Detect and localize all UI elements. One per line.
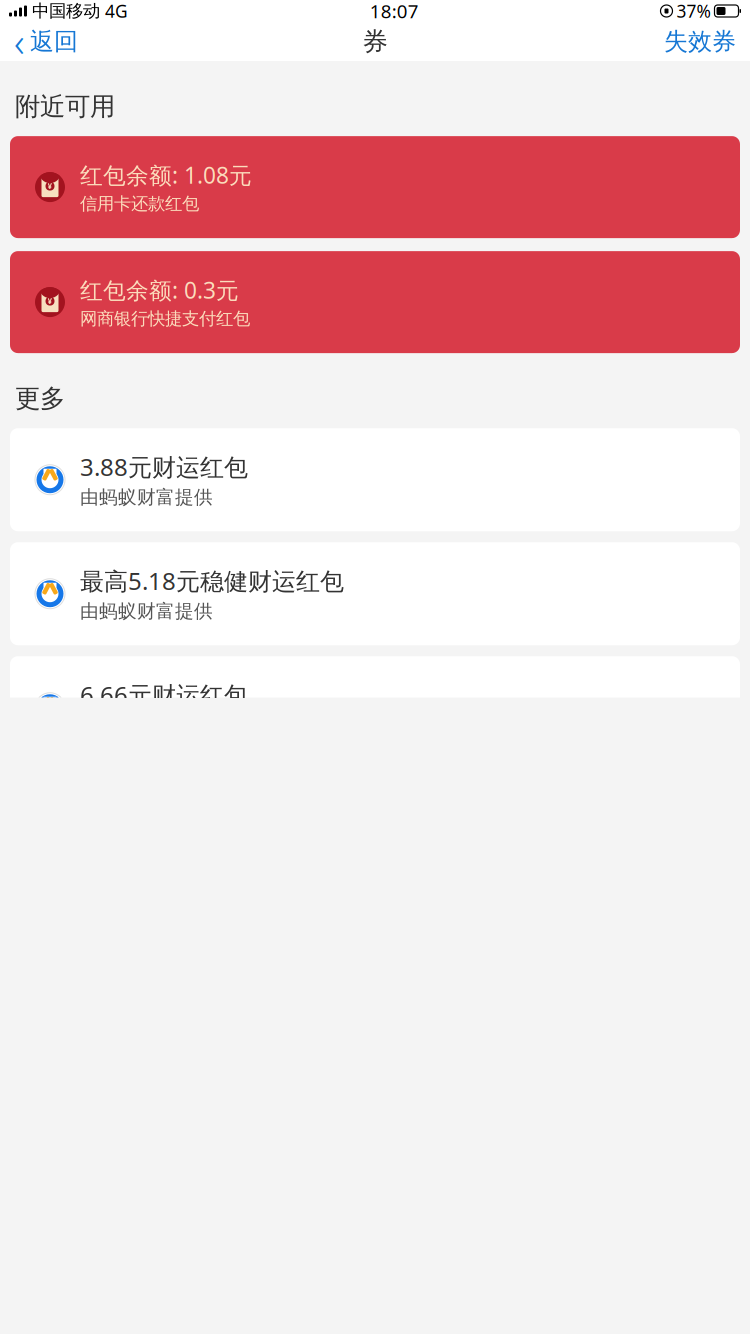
staticText: 失效券 bbox=[664, 27, 736, 56]
staticText: 最高5.18元稳健财运红包 bbox=[80, 565, 344, 597]
staticText: ‹ bbox=[14, 15, 25, 68]
staticText: 4G bbox=[105, 0, 128, 22]
button[interactable]: ¥ bbox=[10, 251, 740, 353]
button[interactable]: 最高5.18元稳健财运红包 bbox=[10, 542, 740, 645]
staticText: 红包余额: 0.3元 bbox=[80, 275, 239, 305]
staticText: 更多 bbox=[15, 383, 65, 414]
staticText: ¥ bbox=[47, 181, 52, 191]
staticText: 附近可用 bbox=[15, 91, 115, 122]
button[interactable]: 失效券 bbox=[650, 21, 750, 61]
staticText: 网商银行快捷支付红包 bbox=[80, 308, 250, 329]
staticText: 信用卡还款红包 bbox=[80, 193, 199, 214]
staticText: 37% bbox=[676, 0, 710, 22]
staticText: 由蚂蚁财富提供 bbox=[80, 600, 213, 623]
staticText: 中国移动 bbox=[32, 0, 100, 22]
button[interactable]: ¥ bbox=[10, 136, 740, 238]
staticText: 18:07 bbox=[370, 0, 419, 23]
staticText: 3.88元财运红包 bbox=[80, 451, 248, 483]
staticText: 券 bbox=[362, 26, 387, 57]
button[interactable]: ‹ bbox=[0, 21, 92, 61]
button[interactable]: 6.66元财运红包 bbox=[10, 656, 740, 759]
staticText: 6.66元财运红包 bbox=[80, 679, 248, 711]
staticText: 红包余额: 1.08元 bbox=[80, 160, 252, 190]
staticText: ¥ bbox=[47, 296, 52, 306]
staticText: 由蚂蚁财富提供 bbox=[80, 486, 213, 509]
staticText: 返回 bbox=[30, 27, 78, 56]
button[interactable]: 3.88元财运红包 bbox=[10, 428, 740, 531]
